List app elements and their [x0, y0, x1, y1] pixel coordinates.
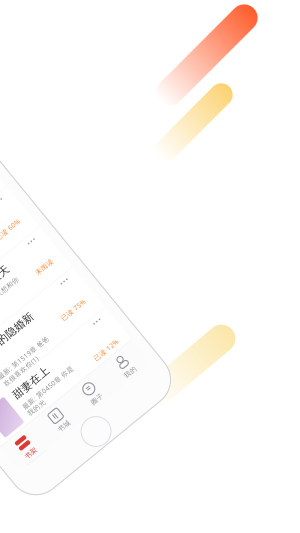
- staticText: 7天前更新: [55, 402, 87, 411]
- button[interactable]: 书架: [11, 359, 54, 389]
- staticText: 已读完: [150, 139, 171, 147]
- staticText: 甜妻在上: [55, 321, 99, 335]
- staticText: 书架: [25, 378, 39, 387]
- button[interactable]: 我家娘子不一般: [11, 161, 182, 212]
- button[interactable]: 锦衣夜行录: [11, 57, 182, 109]
- staticText: 最新: 第1519章 爸爸欢很喜欢你(1): [55, 299, 119, 317]
- button[interactable]: 我的: [139, 359, 182, 389]
- staticText: 已读 30%: [141, 87, 171, 95]
- staticText: 已读完: [150, 398, 171, 406]
- button[interactable]: 江山为聘: [11, 368, 182, 420]
- staticText: 4天前更新: [55, 255, 87, 264]
- staticText: 魅少的隐婚新妻: [55, 270, 121, 296]
- staticText: 已读 12%: [141, 346, 171, 354]
- button[interactable]: 书城: [54, 359, 97, 389]
- staticText: 6天前更新: [55, 358, 87, 367]
- staticText: 最新: 第0966章 天下共主: [55, 390, 133, 399]
- button[interactable]: 甜妻在上: [11, 316, 182, 368]
- button[interactable]: 圈子: [96, 359, 139, 389]
- button[interactable]: 魅少的隐婚新妻: [11, 265, 182, 316]
- button[interactable]: 重生之神医毒妃: [11, 109, 182, 161]
- staticText: 最新: 第0889章 只想和你在一起: [55, 234, 133, 251]
- staticText: 江山为聘: [55, 373, 99, 386]
- button[interactable]: 总裁的天天天天: [11, 213, 182, 264]
- staticText: 5天前更新: [55, 320, 87, 329]
- staticText: 最新: 第0450章 你是我的光: [55, 338, 119, 355]
